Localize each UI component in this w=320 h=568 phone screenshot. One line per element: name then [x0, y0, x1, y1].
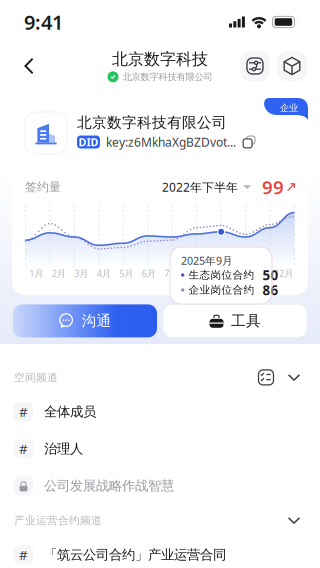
button[interactable]: Filters [240, 51, 270, 81]
button[interactable]: Back [10, 44, 48, 88]
staticText: 8月 [187, 267, 201, 279]
staticText: # [19, 440, 28, 458]
button[interactable]: Collapse [280, 506, 308, 534]
staticText: 86 [262, 281, 278, 299]
staticText: 2025年9月 [181, 253, 233, 268]
staticText: 公司发展战略作战智慧 [44, 478, 174, 494]
staticText: 工具 [231, 312, 261, 330]
button[interactable]: 2022年下半年 [162, 179, 251, 195]
staticText: 北京数字科技 [112, 49, 208, 69]
button[interactable]: # [0, 536, 320, 568]
staticText: 产业运营合约频道 [14, 514, 102, 527]
staticText: 7月 [164, 267, 178, 279]
staticText: 3月 [74, 267, 88, 279]
staticText: DID [78, 135, 98, 149]
staticText: 99 [262, 175, 284, 199]
button[interactable]: Tasks [252, 363, 280, 391]
staticText: 11月 [252, 267, 271, 279]
button[interactable]: 沟通 [13, 304, 157, 337]
button[interactable]: 公司发展战略作战智慧 [0, 467, 320, 504]
button[interactable]: Assets [277, 51, 307, 81]
staticText: 9月 [209, 267, 223, 279]
staticText: 1月 [29, 267, 43, 279]
staticText: 企业 [280, 102, 298, 114]
staticText: # [19, 546, 28, 564]
staticText: 北京数字科技有限公司 [77, 113, 227, 131]
staticText: 全体成员 [44, 404, 96, 420]
staticText: 12月 [274, 267, 293, 279]
button[interactable]: 工具 [163, 304, 307, 337]
staticText: 2022年下半年 [162, 179, 238, 195]
staticText: key:z6MkhaXgBZDvot... [106, 134, 236, 150]
button[interactable]: # [0, 430, 320, 467]
staticText: # [19, 403, 28, 421]
button[interactable]: Collapse [280, 363, 308, 391]
staticText: 4月 [97, 267, 111, 279]
staticText: 「筑云公司合约」产业运营合同 [44, 547, 226, 563]
staticText: 沟通 [81, 312, 111, 330]
staticText: 5月 [119, 267, 133, 279]
staticText: 2月 [52, 267, 66, 279]
staticText: 生态岗位合约 [188, 268, 254, 281]
staticText: 企业岗位合约 [188, 283, 254, 296]
staticText: 10月 [229, 267, 248, 279]
button[interactable]: # [0, 393, 320, 430]
staticText: 空间频道 [14, 371, 58, 384]
staticText: 北京数字科技有限公司 [122, 71, 212, 83]
staticText: 治理人 [44, 441, 83, 457]
button[interactable]: DID [77, 133, 256, 151]
staticText: 签约量 [25, 180, 61, 194]
staticText: 6月 [142, 267, 156, 279]
staticText: 50 [262, 266, 278, 284]
staticText: 9:41 [24, 9, 63, 35]
